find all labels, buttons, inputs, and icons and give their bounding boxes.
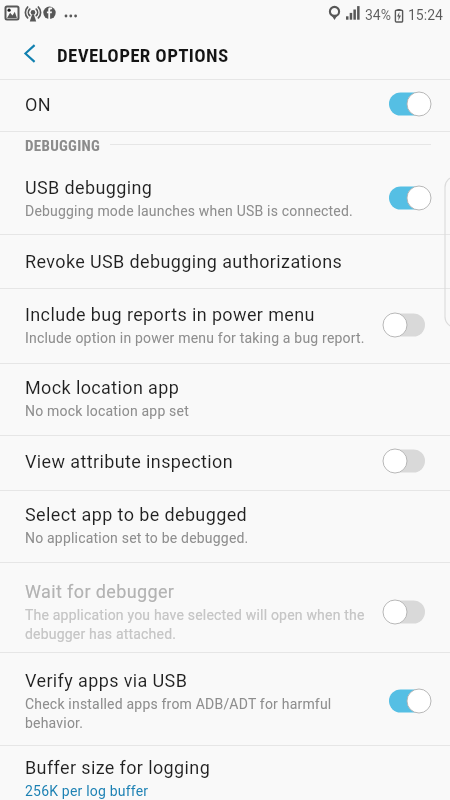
button[interactable]: Off [389, 313, 431, 337]
button[interactable]: Off [389, 600, 431, 624]
staticText: Wait for debugger [25, 581, 175, 602]
staticText: DEBUGGING [25, 137, 101, 155]
staticText: Select app to be debugged [25, 504, 248, 525]
staticText: ON [25, 94, 51, 115]
button[interactable]: Navigate up [0, 31, 46, 79]
button[interactable]: Revoke USB debugging authorizations [0, 235, 450, 288]
button[interactable]: Select app to be debugged [0, 491, 450, 562]
staticText: USB debugging [25, 177, 153, 198]
button[interactable]: Verify apps via USB [0, 653, 450, 745]
button[interactable]: Off [389, 449, 431, 473]
staticText: Include bug reports in power menu [25, 304, 315, 325]
staticText: No application set to be debugged. [25, 530, 249, 546]
staticText: No mock location app set [25, 403, 189, 419]
staticText: View attribute inspection [25, 451, 234, 472]
staticText: Buffer size for logging [25, 757, 211, 778]
staticText: Mock location app [25, 377, 180, 398]
button[interactable]: ON [0, 80, 450, 131]
staticText: Revoke USB debugging authorizations [25, 251, 343, 272]
staticText: 15:24 [408, 7, 443, 23]
staticText: 256K per log buffer [25, 783, 149, 799]
button[interactable]: On [389, 186, 431, 210]
button[interactable]: Mock location app [0, 364, 450, 435]
button[interactable]: USB debugging [0, 165, 450, 234]
staticText: Debugging mode launches when USB is conn… [25, 203, 353, 219]
staticText: DEVELOPER OPTIONS [57, 44, 229, 66]
staticText: 34% [365, 7, 391, 23]
button[interactable]: Include bug reports in power menu [0, 289, 450, 363]
button[interactable]: Buffer size for logging [0, 746, 450, 799]
button[interactable]: On [389, 689, 431, 713]
staticText: Check installed apps from ADB/ADT for ha… [25, 696, 371, 731]
button[interactable]: On [389, 92, 431, 116]
staticText: The application you have selected will o… [25, 607, 371, 642]
button[interactable]: View attribute inspection [0, 436, 450, 490]
staticText: Include option in power menu for taking … [25, 330, 365, 346]
staticText: Verify apps via USB [25, 670, 188, 691]
button[interactable]: Wait for debugger [0, 563, 450, 652]
